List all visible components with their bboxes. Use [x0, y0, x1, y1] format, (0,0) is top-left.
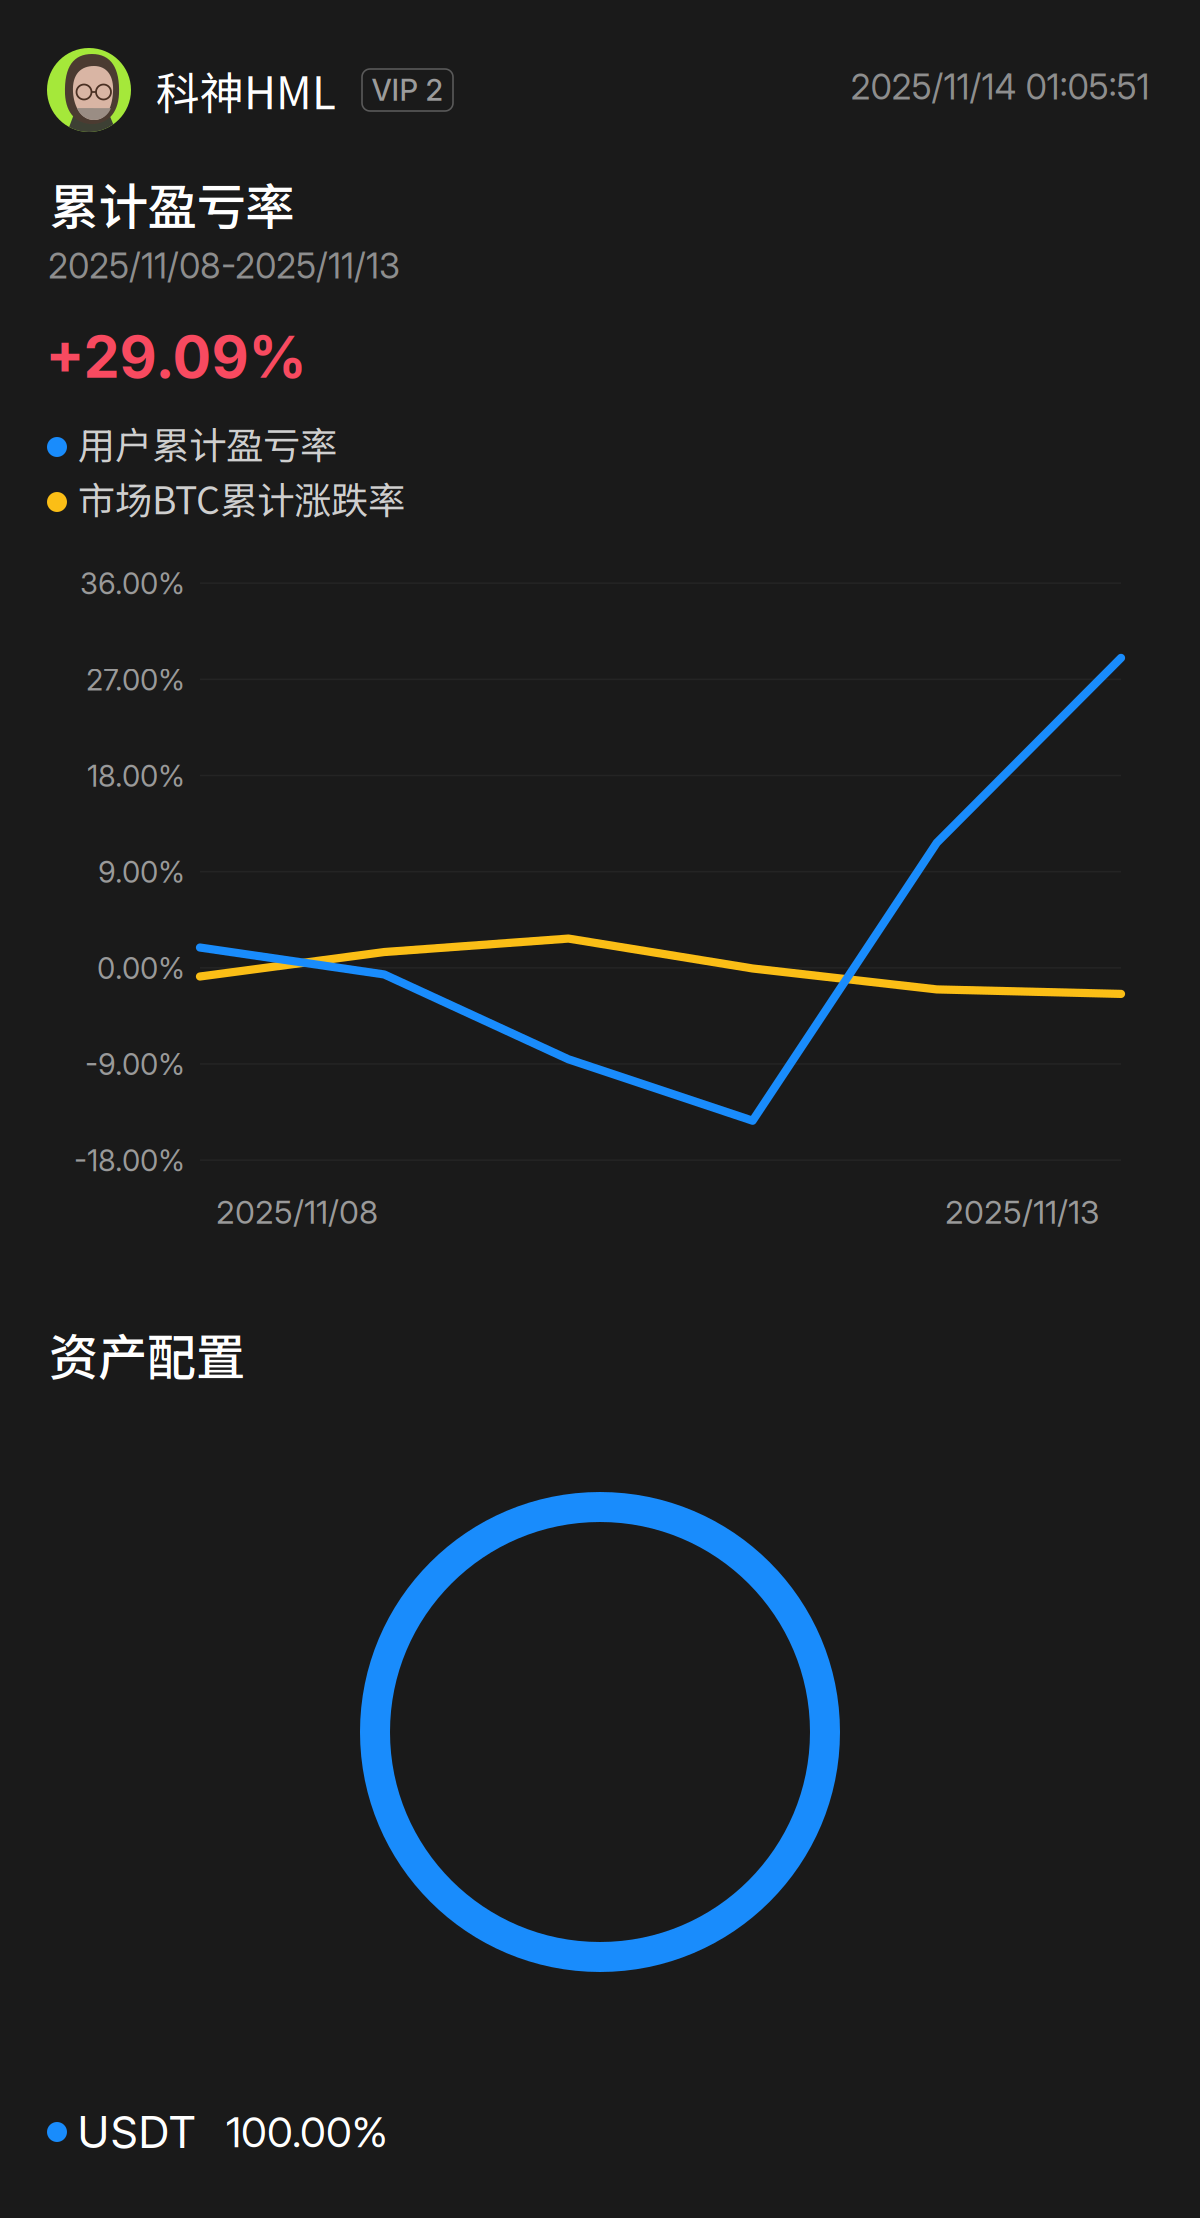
staticText: 2025/11/14 01:05:51	[850, 66, 1149, 108]
staticText: 累计盈亏率	[49, 168, 294, 239]
staticText: 2025/11/13	[945, 1193, 1099, 1231]
staticText: -9.00%	[85, 1047, 185, 1082]
button[interactable]: 用户累计盈亏率	[47, 421, 357, 465]
staticText: 100.00%	[226, 2107, 388, 2157]
staticText: -18.00%	[74, 1143, 185, 1178]
staticText: 资产配置	[49, 1318, 245, 1390]
staticText: 用户累计盈亏率	[78, 416, 337, 470]
staticText: 36.00%	[80, 566, 185, 601]
staticText: 市场BTC累计涨跌率	[78, 471, 405, 525]
staticText: 2025/11/08-2025/11/13	[48, 245, 400, 287]
staticText: 18.00%	[87, 758, 185, 794]
staticText: VIP 2	[371, 72, 443, 108]
staticText: 9.00%	[98, 854, 185, 890]
button[interactable]: USDT	[47, 2106, 467, 2158]
button[interactable]: 市场BTC累计涨跌率	[47, 476, 427, 520]
staticText: 27.00%	[86, 662, 185, 698]
button[interactable]: 科神HML	[47, 47, 547, 133]
staticText: USDT	[77, 2105, 196, 2159]
staticText: 2025/11/08	[216, 1193, 378, 1231]
staticText: +29.09%	[45, 322, 306, 392]
staticText: 科神HML	[156, 58, 336, 122]
staticText: 0.00%	[97, 951, 185, 986]
